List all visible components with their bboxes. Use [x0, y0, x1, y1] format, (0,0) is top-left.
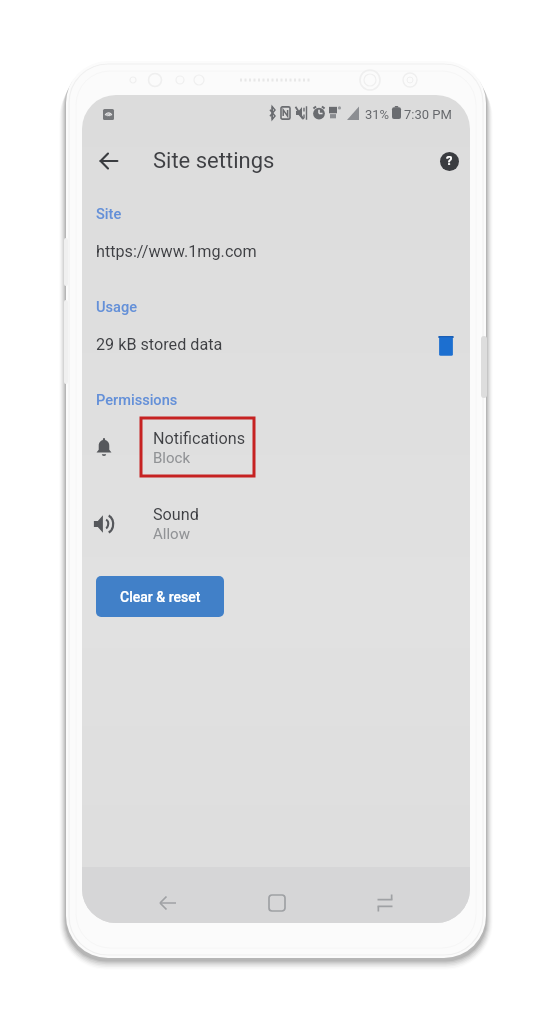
- button[interactable]: Back: [146, 881, 190, 923]
- button[interactable]: Home: [255, 881, 299, 923]
- staticText: Notifications: [153, 429, 246, 448]
- staticText: Block: [153, 449, 191, 467]
- staticText: 31%: [365, 107, 390, 122]
- button[interactable]: Notifications: [82, 421, 470, 475]
- button[interactable]: Recent apps: [363, 881, 407, 923]
- staticText: Sound: [153, 505, 199, 524]
- staticText: Site: [96, 205, 122, 222]
- staticText: Clear & reset: [120, 589, 201, 605]
- staticText: https://www.1mg.com: [96, 242, 257, 261]
- button[interactable]: Clear & reset: [96, 576, 224, 617]
- staticText: Site settings: [153, 148, 275, 174]
- staticText: 7:30 PM: [404, 107, 452, 122]
- staticText: Usage: [96, 298, 138, 315]
- button[interactable]: Sound: [82, 497, 470, 551]
- staticText: Allow: [153, 525, 190, 543]
- button[interactable]: Help: [435, 147, 463, 175]
- staticText: ?: [446, 153, 453, 168]
- button[interactable]: Delete stored data: [430, 330, 462, 362]
- staticText: Permissions: [96, 391, 178, 408]
- button[interactable]: Navigate up: [91, 146, 127, 176]
- staticText: 29 kB stored data: [96, 335, 223, 354]
